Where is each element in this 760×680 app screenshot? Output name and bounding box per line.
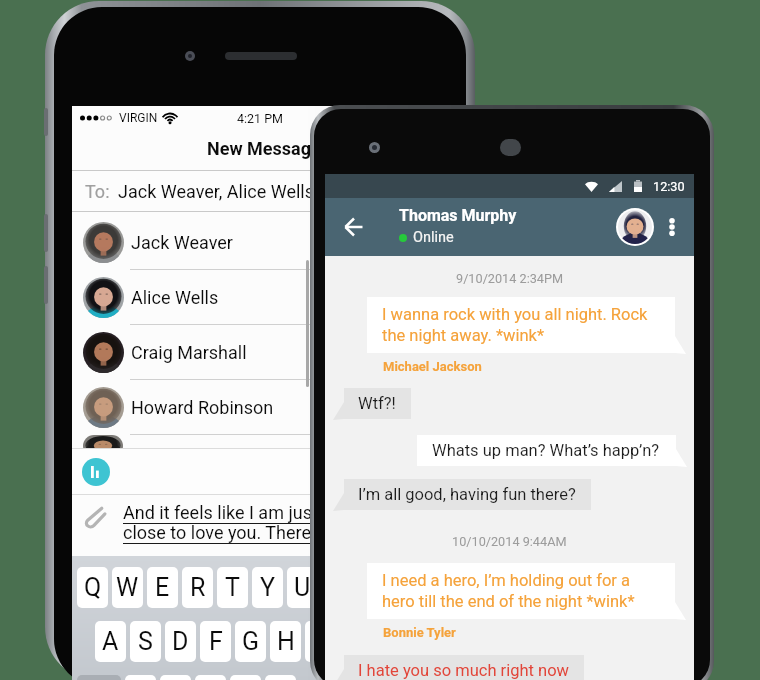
button[interactable]: Shift <box>77 675 121 680</box>
staticText: Q <box>84 573 102 602</box>
button[interactable]: Craig Marshall <box>72 325 455 380</box>
button[interactable]: J <box>305 621 336 662</box>
button[interactable]: Back <box>325 198 381 256</box>
button[interactable]: F <box>200 621 231 662</box>
staticText: J <box>314 627 328 656</box>
button[interactable]: Y <box>252 567 283 608</box>
button[interactable]: Q <box>77 567 108 608</box>
button[interactable]: L <box>375 621 406 662</box>
staticText: Thomas Murphy <box>399 206 517 225</box>
staticText: Craig Marshall <box>131 342 247 363</box>
staticText: R <box>190 573 206 602</box>
staticText: D <box>172 627 189 656</box>
button[interactable]: Whats up man? What’s happ’n? <box>417 435 676 466</box>
staticText: Michael Jackson <box>383 359 482 374</box>
button[interactable]: X <box>160 675 191 680</box>
button[interactable]: R <box>182 567 213 608</box>
button[interactable]: O <box>357 567 388 608</box>
staticText: Online <box>413 229 454 246</box>
staticText: U <box>294 573 311 602</box>
button[interactable]: A <box>95 621 126 662</box>
button[interactable]: W <box>112 567 143 608</box>
staticText: VIRGIN <box>119 111 158 125</box>
staticText: O <box>364 573 382 602</box>
staticText: 4:21 PM <box>237 111 284 126</box>
staticText: P <box>400 573 416 602</box>
staticText: S <box>138 627 153 656</box>
staticText: close to love you. There <box>123 522 312 543</box>
button[interactable]: I need a hero, I’m holding out for a <box>367 563 675 619</box>
staticText: 10/10/2014 9:44AM <box>452 534 567 549</box>
button[interactable]: I <box>322 567 353 608</box>
staticText: 12:30 <box>653 179 685 194</box>
staticText: E <box>155 573 170 602</box>
staticText: W <box>116 573 139 602</box>
staticText: Jack Weaver <box>131 232 233 253</box>
staticText: F <box>209 627 223 656</box>
staticText: Howard Robinson <box>131 397 274 418</box>
staticText: T <box>225 573 240 602</box>
staticText: hero till the end of the night *wink* <box>382 592 635 611</box>
staticText: To: <box>85 181 110 202</box>
button[interactable]: Alice Wells <box>72 270 455 325</box>
button[interactable]: More options <box>654 198 690 256</box>
button[interactable] <box>72 435 455 457</box>
button[interactable]: U <box>287 567 318 608</box>
staticText: the night away. *wink* <box>382 326 545 345</box>
button[interactable]: I hate you so much right now <box>344 655 584 680</box>
staticText: Whats up man? What’s happ’n? <box>432 441 660 460</box>
staticText: I need a hero, I’m holding out for a <box>382 571 630 590</box>
button[interactable]: Z <box>125 675 156 680</box>
button[interactable]: Wtf?! <box>344 388 411 419</box>
button[interactable]: G <box>235 621 266 662</box>
staticText: A <box>102 627 119 656</box>
button[interactable]: E <box>147 567 178 608</box>
button[interactable]: Attach file <box>81 503 107 529</box>
staticText: I hate you so much right now <box>358 661 569 680</box>
staticText: Jack Weaver, Alice Wells <box>118 181 315 202</box>
button[interactable]: I wanna rock with you all night. Rock <box>367 297 675 353</box>
staticText: H <box>277 627 295 656</box>
button[interactable]: C <box>195 675 226 680</box>
button[interactable]: Howard Robinson <box>72 380 455 435</box>
button[interactable]: D <box>165 621 196 662</box>
button[interactable]: K <box>340 621 371 662</box>
staticText: 9/10/2014 2:34PM <box>456 271 564 286</box>
button[interactable]: T <box>217 567 248 608</box>
button[interactable]: I’m all good, having fun there? <box>344 479 591 510</box>
button[interactable]: Jack Weaver <box>72 215 455 270</box>
button[interactable]: B <box>265 675 296 680</box>
staticText: I’m all good, having fun there? <box>358 485 576 504</box>
button[interactable]: S <box>130 621 161 662</box>
staticText: New Message <box>207 138 321 159</box>
staticText: L <box>384 627 398 656</box>
button[interactable]: Contact photo <box>616 208 654 246</box>
staticText: Alice Wells <box>131 287 219 308</box>
button[interactable]: Record audio <box>82 458 110 486</box>
staticText: And it feels like I am just <box>123 502 318 523</box>
staticText: Wtf?! <box>358 394 396 413</box>
staticText: Y <box>260 573 276 602</box>
staticText: G <box>242 627 260 656</box>
button[interactable]: H <box>270 621 301 662</box>
staticText: Bonnie Tyler <box>383 625 456 640</box>
button[interactable]: V <box>230 675 261 680</box>
staticText: I wanna rock with you all night. Rock <box>382 305 648 324</box>
button[interactable]: P <box>392 567 423 608</box>
